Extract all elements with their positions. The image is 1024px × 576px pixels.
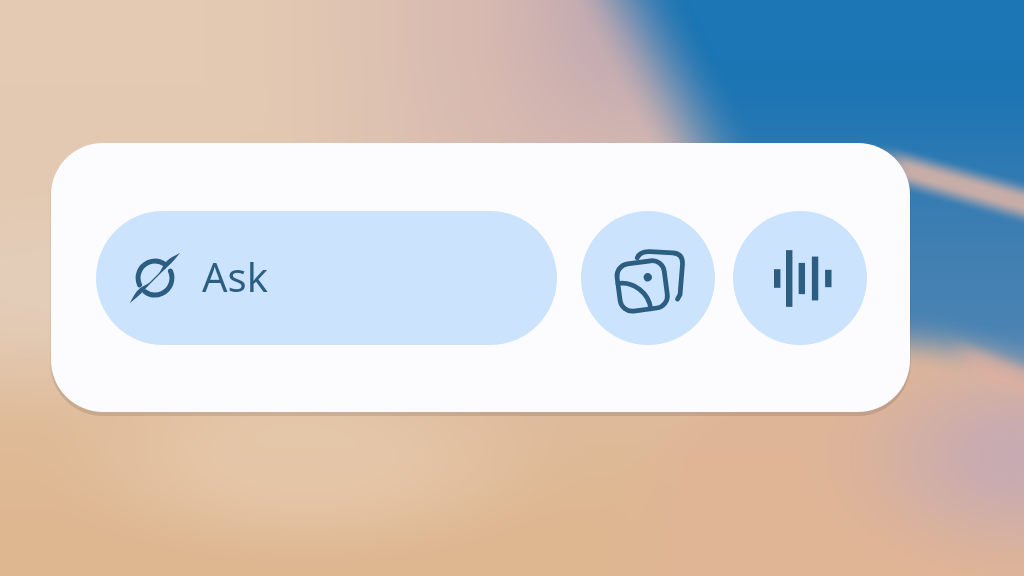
button[interactable]: Search with camera [581,211,715,345]
button[interactable]: Voice search [733,211,867,345]
staticText: Ask [202,249,269,303]
button[interactable]: Ask [96,211,557,345]
